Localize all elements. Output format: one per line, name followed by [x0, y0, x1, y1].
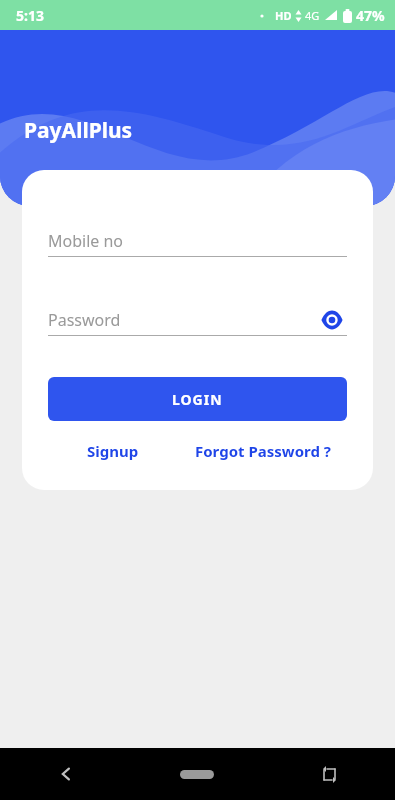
- staticText: Mobile no: [48, 230, 124, 252]
- button[interactable]: Password: [48, 305, 347, 335]
- staticText: LOGIN: [172, 390, 223, 409]
- button[interactable]: LOGIN: [48, 377, 347, 421]
- staticText: 4G: [305, 8, 320, 23]
- staticText: Signup: [87, 441, 139, 461]
- button[interactable]: Back: [0, 748, 131, 800]
- button[interactable]: Show password: [317, 305, 347, 335]
- button[interactable]: Rotate screen: [263, 748, 395, 800]
- button[interactable]: Signup: [48, 437, 178, 465]
- button[interactable]: Forgot Password ?: [178, 437, 347, 465]
- staticText: Forgot Password ?: [195, 441, 331, 461]
- staticText: Password: [48, 309, 121, 331]
- staticText: 47%: [356, 6, 385, 25]
- button[interactable]: Home: [131, 748, 263, 800]
- staticText: HD: [275, 8, 292, 23]
- staticText: PayAllPlus: [24, 116, 133, 145]
- staticText: 5:13: [16, 6, 44, 25]
- button[interactable]: Mobile no: [48, 226, 347, 256]
